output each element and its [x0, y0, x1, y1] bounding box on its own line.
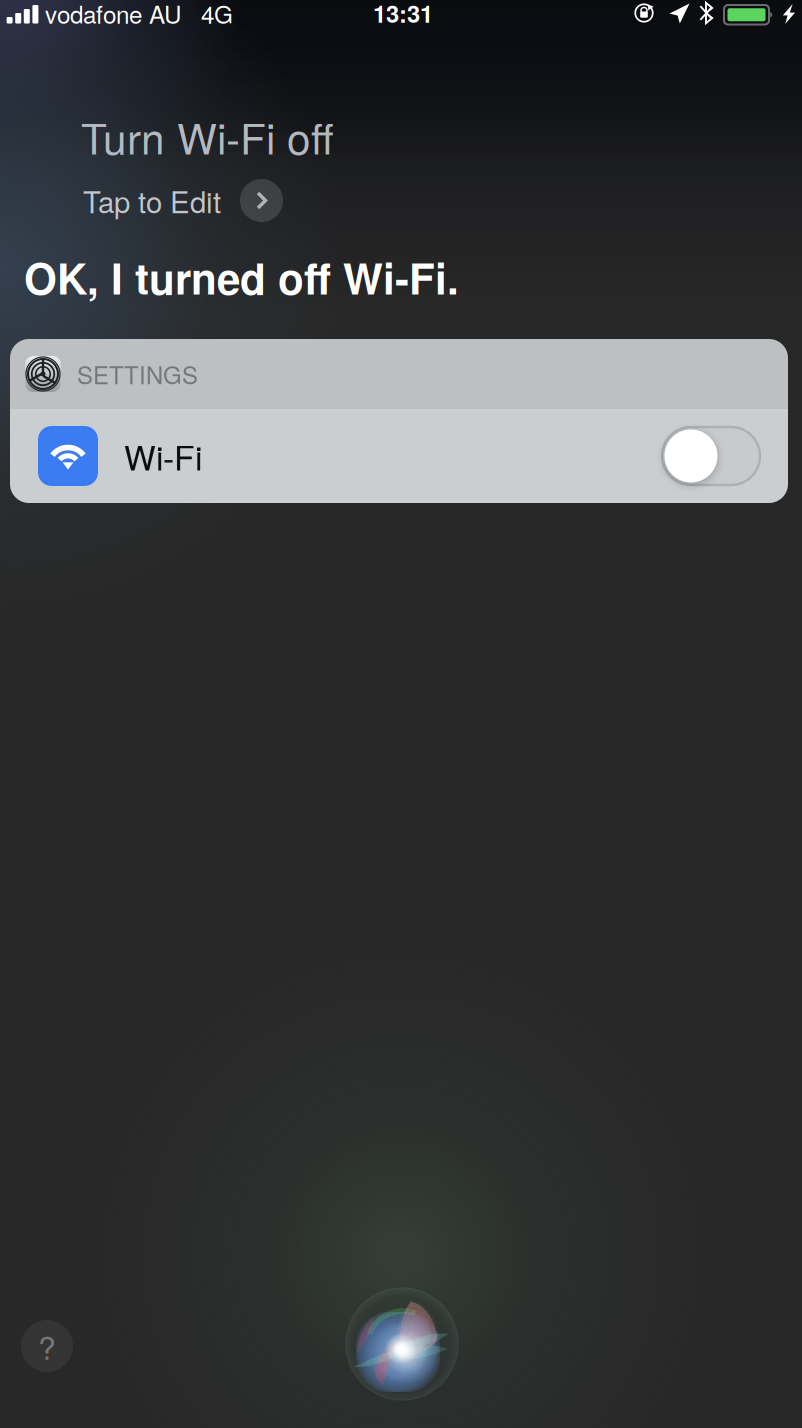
button[interactable]: Wi-Fi — [10, 409, 788, 503]
staticText: vodafone AU — [45, 0, 182, 31]
staticText: Tap to Edit — [83, 179, 221, 221]
button[interactable]: Siri Help — [21, 1320, 73, 1372]
staticText: ? — [38, 1323, 56, 1369]
staticText: 13:31 — [373, 0, 433, 30]
staticText: SETTINGS — [77, 357, 198, 391]
button[interactable]: Tap to Edit — [83, 179, 283, 222]
staticText: 4G — [201, 0, 233, 31]
staticText: Turn Wi-Fi off — [81, 106, 334, 166]
staticText: Wi-Fi — [124, 432, 202, 480]
staticText: OK, I turned off Wi-Fi. — [24, 247, 459, 307]
